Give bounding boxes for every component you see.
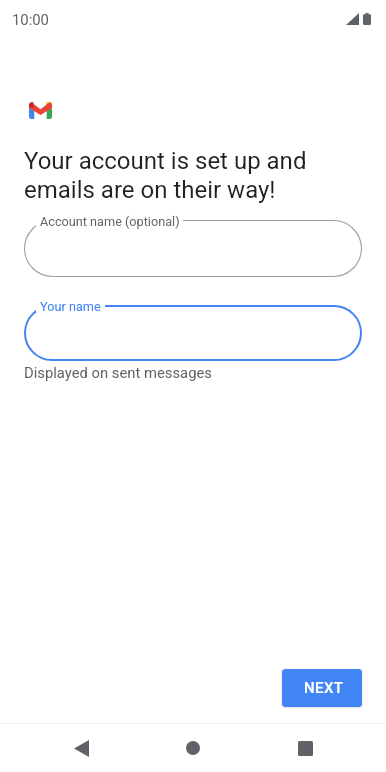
button[interactable]: Home	[169, 724, 217, 772]
staticText: Your name	[40, 299, 101, 314]
staticText: NEXT	[304, 679, 344, 697]
staticText: Account name (optional)	[40, 214, 180, 229]
button[interactable]: NEXT	[282, 669, 362, 707]
button[interactable]: Account name (optional)	[24, 220, 362, 277]
staticText: 10:00	[12, 11, 49, 28]
staticText: Your account is set up and emails are on…	[24, 147, 324, 203]
staticText: Displayed on sent messages	[24, 364, 212, 381]
button[interactable]: Recents	[281, 724, 329, 772]
button[interactable]: Your name	[24, 305, 362, 361]
button[interactable]: Back	[57, 724, 105, 772]
